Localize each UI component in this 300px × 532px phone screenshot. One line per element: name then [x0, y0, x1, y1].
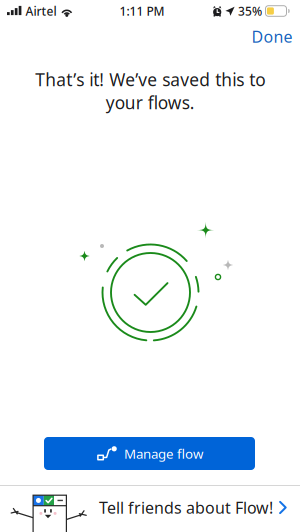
staticText: Manage flow: [124, 445, 203, 462]
button[interactable]: Tell friends about Flow!: [0, 486, 300, 532]
button[interactable]: Done: [235, 18, 300, 54]
staticText: Airtel: [25, 3, 56, 19]
staticText: 35%: [238, 3, 262, 19]
staticText: That’s it! We’ve saved this to your flow…: [35, 68, 265, 114]
staticText: Tell friends about Flow!: [99, 497, 273, 518]
staticText: 1:11 PM: [119, 3, 164, 19]
button[interactable]: Manage flow: [44, 437, 255, 470]
staticText: Done: [251, 26, 292, 47]
